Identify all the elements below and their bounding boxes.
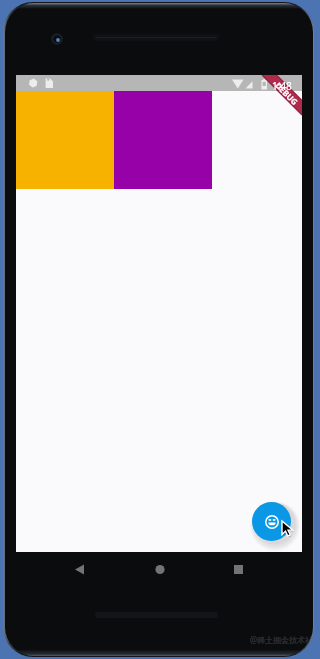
- staticText: DEBUG: [273, 80, 301, 107]
- staticText: @稀土掘金技术社区: [250, 634, 313, 645]
- button[interactable]: Smile action: [252, 502, 291, 541]
- staticText: 1:48: [272, 79, 292, 93]
